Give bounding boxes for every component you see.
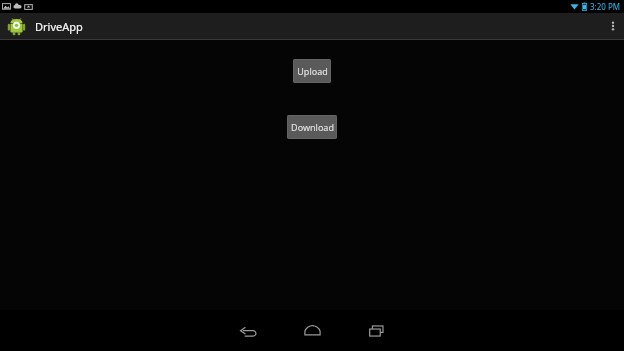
button[interactable]: Back xyxy=(220,310,276,351)
staticText: DriveApp xyxy=(35,19,83,34)
staticText: 3:20 PM xyxy=(590,1,621,12)
button[interactable]: More options xyxy=(602,13,624,39)
button[interactable]: Recent apps xyxy=(348,310,404,351)
button[interactable]: Home xyxy=(284,310,340,351)
button[interactable]: Upload xyxy=(293,59,331,83)
staticText: Upload xyxy=(297,65,328,77)
button[interactable]: Download xyxy=(287,115,337,139)
staticText: Download xyxy=(291,121,334,133)
